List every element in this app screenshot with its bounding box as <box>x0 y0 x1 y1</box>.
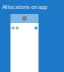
staticText: All locations on app <box>2 3 47 11</box>
